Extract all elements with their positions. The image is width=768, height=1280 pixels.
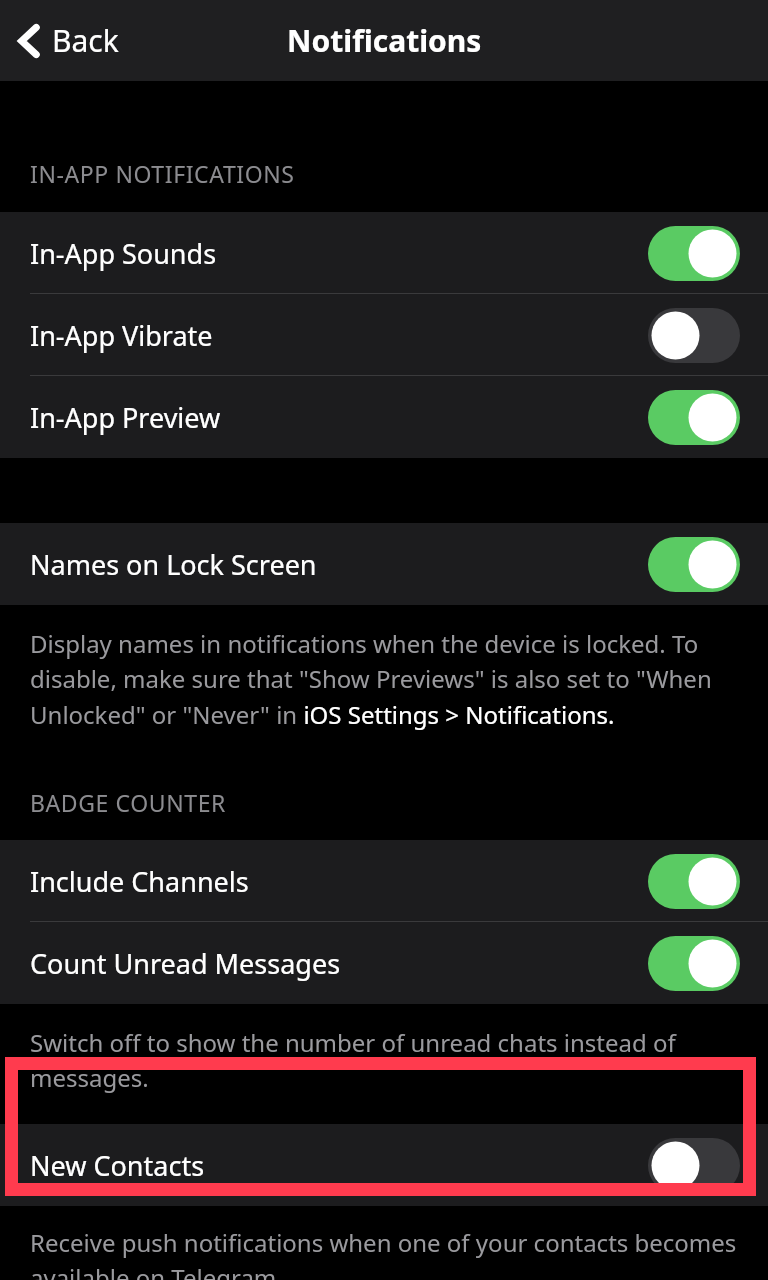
button[interactable]: Include Channels xyxy=(0,840,768,922)
staticText: Notifications xyxy=(287,20,482,61)
staticText: Display names in notifications when the … xyxy=(30,627,738,731)
staticText: New Contacts xyxy=(30,1147,205,1184)
staticText: Receive push notifications when one of y… xyxy=(30,1226,738,1280)
button[interactable]: Names on Lock Screen xyxy=(0,523,768,605)
button[interactable]: On xyxy=(648,390,740,445)
button[interactable]: Count Unread Messages xyxy=(0,922,768,1004)
staticText: In-App Preview xyxy=(30,399,221,436)
button[interactable]: On xyxy=(648,936,740,991)
staticText: Count Unread Messages xyxy=(30,945,341,982)
button[interactable]: In-App Vibrate xyxy=(0,294,768,376)
staticText: IN-APP NOTIFICATIONS xyxy=(30,158,295,189)
button[interactable]: On xyxy=(648,226,740,281)
button[interactable]: In-App Sounds xyxy=(0,212,768,294)
staticText: In-App Sounds xyxy=(30,235,217,272)
button[interactable]: On xyxy=(648,537,740,592)
button[interactable]: On xyxy=(648,854,740,909)
button[interactable]: Off xyxy=(648,1138,740,1193)
staticText: In-App Vibrate xyxy=(30,317,213,354)
button[interactable]: Back xyxy=(10,14,125,67)
staticText: Switch off to show the number of unread … xyxy=(30,1026,738,1094)
staticText: Back xyxy=(52,20,119,61)
staticText: Names on Lock Screen xyxy=(30,546,317,583)
staticText: BADGE COUNTER xyxy=(30,787,226,818)
button[interactable]: Off xyxy=(648,308,740,363)
button[interactable]: In-App Preview xyxy=(0,376,768,458)
button[interactable]: New Contacts xyxy=(0,1124,768,1206)
staticText: Include Channels xyxy=(30,863,249,900)
